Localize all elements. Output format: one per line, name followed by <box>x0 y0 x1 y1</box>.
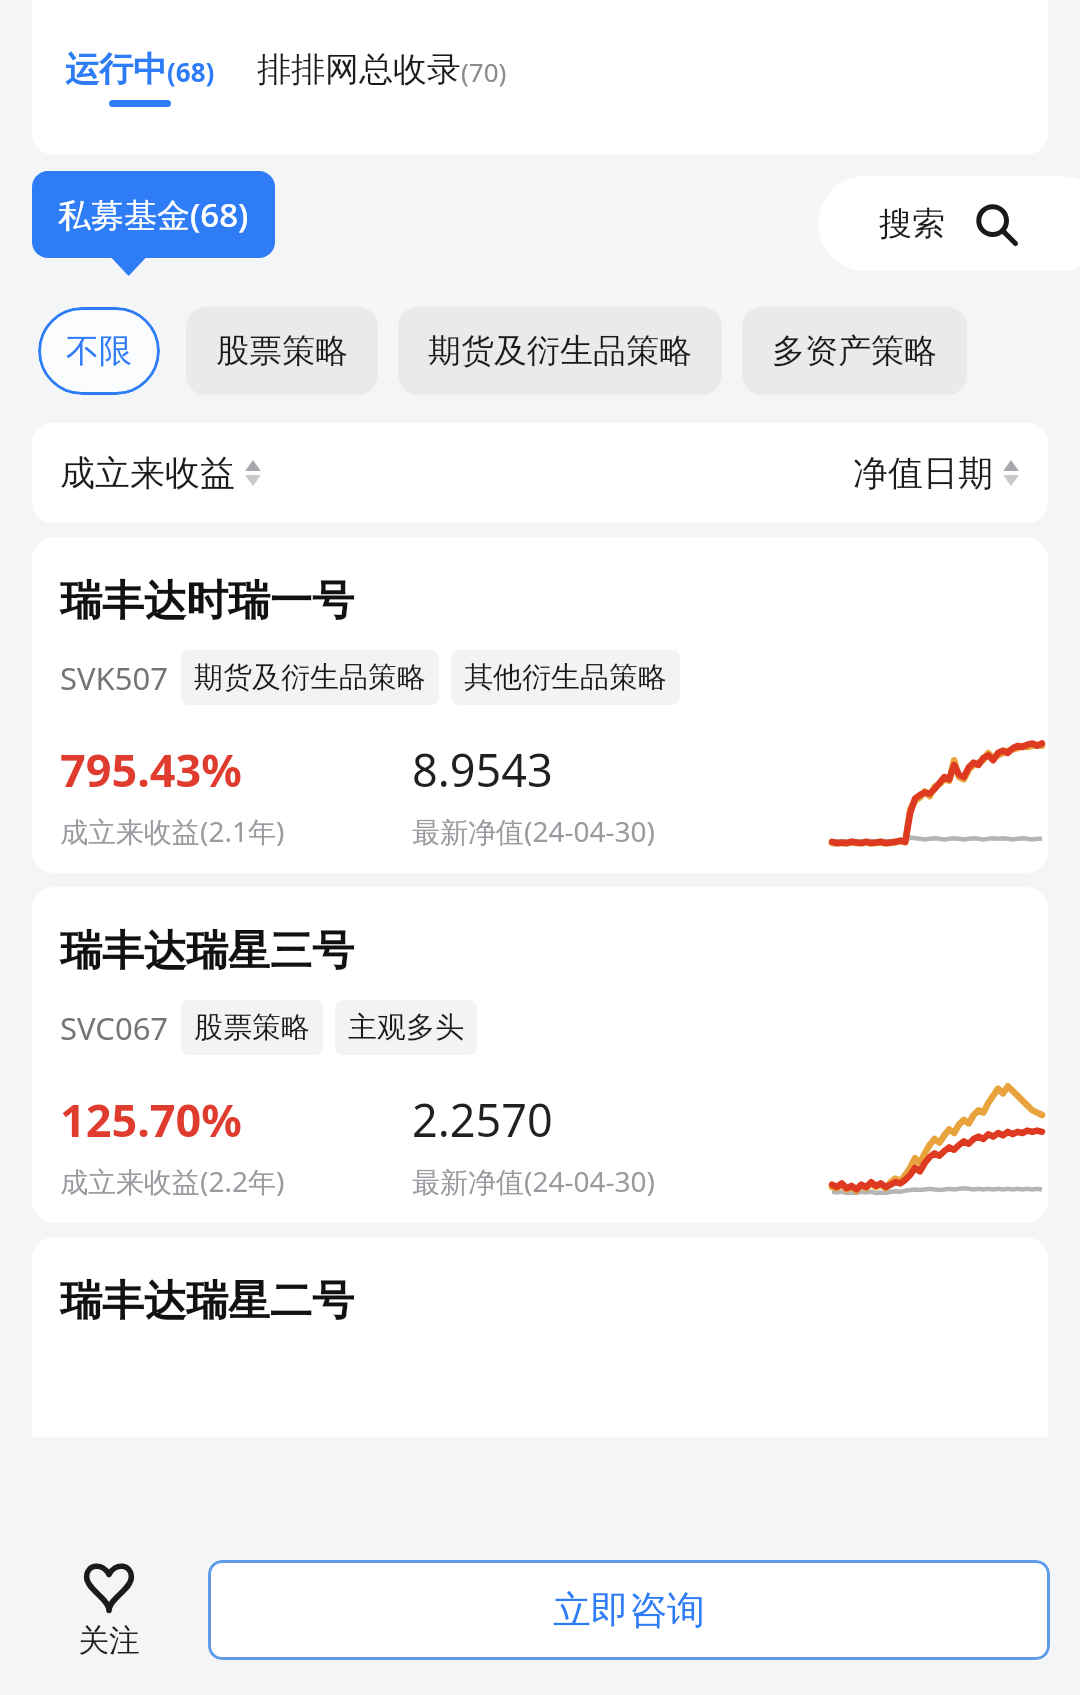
staticText: 股票策略 <box>194 1009 310 1046</box>
button[interactable]: 瑞丰达瑞星三号 <box>32 887 1048 1223</box>
button[interactable]: 成立来收益 <box>60 451 262 495</box>
button[interactable]: 股票策略 <box>186 307 378 395</box>
staticText: 成立来收益(2.2年) <box>60 1162 285 1200</box>
staticText: 125.70% <box>60 1089 242 1150</box>
staticText: 期货及衍生品策略 <box>194 659 426 696</box>
other: Search <box>975 203 1017 245</box>
staticText: 私募基金(68) <box>58 192 249 237</box>
staticText: 搜索 <box>879 203 945 245</box>
staticText: 瑞丰达瑞星二号 <box>60 1275 354 1328</box>
staticText: 运行中 <box>65 48 167 91</box>
staticText: 不限 <box>66 330 132 372</box>
staticText: 8.9543 <box>412 739 553 800</box>
staticText: 最新净值(24-04-30) <box>412 812 655 850</box>
button[interactable]: 搜索 <box>818 176 1080 271</box>
button[interactable]: 关注 <box>34 1561 184 1660</box>
staticText: 净值日期 <box>853 451 993 495</box>
staticText: SVK507 <box>60 657 169 699</box>
staticText: (68) <box>167 54 215 89</box>
button[interactable]: 期货及衍生品策略 <box>398 307 722 395</box>
button[interactable]: 净值日期 <box>853 451 1020 495</box>
staticText: 瑞丰达时瑞一号 <box>60 575 354 628</box>
button[interactable]: 瑞丰达时瑞一号 <box>32 537 1048 873</box>
button[interactable]: 私募基金(68) <box>32 171 275 258</box>
staticText: 立即咨询 <box>553 1586 705 1634</box>
staticText: 其他衍生品策略 <box>464 659 667 696</box>
button[interactable]: 不限 <box>38 307 160 395</box>
button[interactable]: 运行中 <box>65 48 215 107</box>
staticText: 关注 <box>78 1621 140 1660</box>
staticText: 排排网总收录 <box>257 48 461 91</box>
button[interactable]: 排排网总收录 <box>257 48 507 91</box>
staticText: 最新净值(24-04-30) <box>412 1162 655 1200</box>
staticText: 主观多头 <box>348 1009 464 1046</box>
staticText: 多资产策略 <box>772 330 937 372</box>
button[interactable]: 立即咨询 <box>208 1560 1050 1660</box>
staticText: 股票策略 <box>216 330 348 372</box>
staticText: SVC067 <box>60 1007 169 1049</box>
staticText: (70) <box>461 54 507 89</box>
staticText: 成立来收益 <box>60 451 235 495</box>
staticText: 成立来收益(2.1年) <box>60 812 285 850</box>
button[interactable]: 瑞丰达瑞星二号 <box>32 1237 1048 1437</box>
staticText: 期货及衍生品策略 <box>428 330 692 372</box>
staticText: 2.2570 <box>412 1089 553 1150</box>
button[interactable]: 多资产策略 <box>742 307 967 395</box>
staticText: 795.43% <box>60 739 242 800</box>
staticText: 瑞丰达瑞星三号 <box>60 925 354 978</box>
